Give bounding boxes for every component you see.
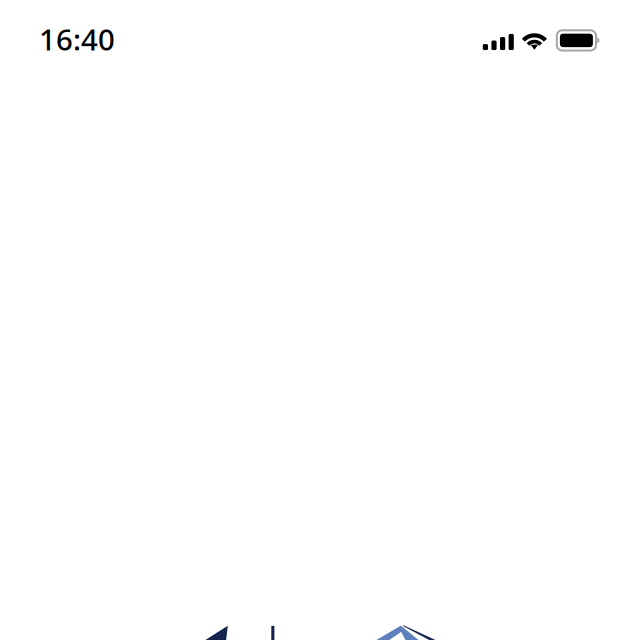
staticText: 16:40	[39, 19, 115, 58]
